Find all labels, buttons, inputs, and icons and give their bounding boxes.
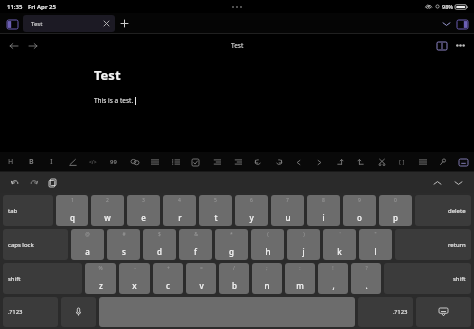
button[interactable]: 1 bbox=[56, 195, 88, 226]
staticText: + bbox=[167, 265, 170, 272]
button[interactable]: quote bbox=[107, 153, 120, 171]
staticText: u bbox=[285, 212, 291, 223]
button[interactable]: * bbox=[215, 229, 248, 260]
button[interactable]: lines bbox=[416, 153, 429, 171]
button[interactable]: return bbox=[395, 229, 471, 260]
staticText: : bbox=[299, 265, 301, 272]
staticText: d bbox=[157, 246, 162, 257]
button[interactable]: Test bbox=[23, 15, 115, 32]
staticText: H bbox=[8, 157, 14, 167]
button[interactable]: H bbox=[4, 153, 17, 171]
button[interactable]: ( bbox=[251, 229, 284, 260]
button[interactable]: scissors bbox=[375, 153, 388, 171]
button[interactable]: key bbox=[436, 153, 449, 171]
button[interactable]: Toggle sidebar bbox=[5, 17, 19, 31]
button[interactable]: More options bbox=[453, 38, 468, 53]
staticText: ' bbox=[339, 231, 341, 238]
button[interactable]: 2 bbox=[91, 195, 124, 226]
button[interactable]: ol bbox=[169, 153, 182, 171]
button[interactable]: 5 bbox=[199, 195, 232, 226]
button[interactable]: @ bbox=[71, 229, 104, 260]
button[interactable]: I bbox=[45, 153, 58, 171]
button[interactable]: kb bbox=[457, 153, 470, 171]
button[interactable]: Reading mode bbox=[434, 38, 449, 53]
staticText: i bbox=[322, 212, 325, 223]
button[interactable]: Hide keyboard bbox=[416, 297, 471, 327]
staticText: Test bbox=[31, 20, 43, 28]
button[interactable]: tab bbox=[3, 195, 53, 226]
button[interactable]: 7 bbox=[271, 195, 304, 226]
button[interactable]: : bbox=[285, 263, 315, 294]
button[interactable]: 8 bbox=[307, 195, 340, 226]
staticText: j bbox=[302, 246, 305, 257]
button[interactable]: tab2 bbox=[354, 153, 367, 171]
button[interactable]: indent bbox=[210, 153, 223, 171]
button[interactable]: $ bbox=[143, 229, 176, 260]
button[interactable]: = bbox=[186, 263, 216, 294]
button[interactable]: Back bbox=[6, 38, 21, 53]
button[interactable]: lt bbox=[292, 153, 305, 171]
button[interactable]: caps lock bbox=[3, 229, 68, 260]
staticText: 7 bbox=[286, 197, 289, 204]
button[interactable]: New tab bbox=[118, 17, 131, 30]
button[interactable]: Close tab bbox=[102, 19, 111, 28]
staticText: 3 bbox=[142, 197, 145, 204]
button[interactable]: shift bbox=[384, 263, 471, 294]
button[interactable]: + bbox=[153, 263, 183, 294]
button[interactable]: Forward bbox=[25, 38, 40, 53]
button[interactable]: 9 bbox=[343, 195, 376, 226]
button[interactable]: .?123 bbox=[3, 297, 58, 327]
button[interactable]: check bbox=[189, 153, 202, 171]
button[interactable]: Split view bbox=[455, 17, 469, 31]
staticText: s bbox=[122, 246, 126, 257]
button[interactable]: 0 bbox=[379, 195, 412, 226]
button[interactable]: 4 bbox=[163, 195, 196, 226]
button[interactable]: undo bbox=[251, 153, 264, 171]
button[interactable]: ! bbox=[318, 263, 348, 294]
staticText: " bbox=[374, 231, 377, 238]
staticText: 8 bbox=[322, 197, 325, 204]
button[interactable]: outdent bbox=[231, 153, 244, 171]
button[interactable]: & bbox=[179, 229, 212, 260]
button[interactable]: redo bbox=[272, 153, 285, 171]
staticText: x bbox=[132, 280, 137, 291]
button[interactable]: .?123 bbox=[358, 297, 413, 327]
staticText: ? bbox=[365, 265, 368, 272]
button[interactable]: " bbox=[359, 229, 392, 260]
button[interactable]: shift bbox=[3, 263, 82, 294]
button[interactable]: ) bbox=[287, 229, 320, 260]
button[interactable]: Paste bbox=[45, 175, 60, 190]
button[interactable]: tab1 bbox=[333, 153, 346, 171]
button[interactable]: link bbox=[128, 153, 141, 171]
button[interactable]: 3 bbox=[127, 195, 160, 226]
button[interactable]: Dictate bbox=[61, 297, 96, 327]
staticText: = bbox=[200, 265, 203, 272]
button[interactable]: ? bbox=[351, 263, 381, 294]
button[interactable]: ' bbox=[323, 229, 356, 260]
button[interactable]: ; bbox=[252, 263, 282, 294]
button[interactable]: B bbox=[25, 153, 38, 171]
button[interactable]: Redo bbox=[26, 175, 41, 190]
staticText: w bbox=[104, 212, 111, 223]
button[interactable]: Next bbox=[451, 175, 466, 190]
staticText: r bbox=[178, 212, 182, 223]
button[interactable]: Undo bbox=[7, 175, 22, 190]
button[interactable]: - bbox=[119, 263, 150, 294]
button[interactable]: pen bbox=[66, 153, 79, 171]
button[interactable]: gt bbox=[313, 153, 326, 171]
button[interactable]: Tab options bbox=[439, 17, 453, 31]
staticText: 4 bbox=[178, 197, 181, 204]
staticText: # bbox=[122, 231, 126, 238]
button[interactable]: % bbox=[85, 263, 116, 294]
button[interactable]: 6 bbox=[235, 195, 268, 226]
button[interactable]: ul bbox=[148, 153, 161, 171]
button[interactable]: code bbox=[86, 153, 99, 171]
button[interactable]: # bbox=[107, 229, 140, 260]
staticText: return bbox=[448, 241, 466, 249]
button[interactable]: Previous bbox=[430, 175, 445, 190]
button[interactable]: brackets bbox=[395, 153, 408, 171]
button[interactable]: / bbox=[219, 263, 249, 294]
staticText: Test bbox=[231, 41, 244, 50]
button[interactable]: delete bbox=[415, 195, 471, 226]
